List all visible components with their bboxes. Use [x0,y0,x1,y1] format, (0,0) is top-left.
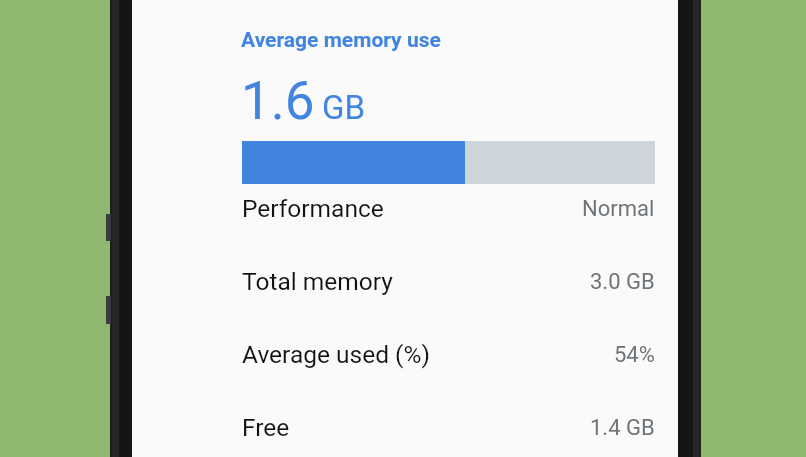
staticText: 3.0 GB [590,269,655,295]
staticText: Average used (%) [242,340,430,369]
button[interactable]: Total memory [242,245,655,318]
staticText: 1.6 [241,70,315,132]
button[interactable]: Performance [242,172,655,245]
staticText: Average memory use [241,28,441,53]
staticText: GB [322,88,366,127]
button[interactable]: Free [242,391,655,457]
staticText: Normal [582,196,655,222]
staticText: Free [242,413,290,442]
staticText: 1.4 GB [590,415,655,441]
button[interactable]: Average used (%) [242,318,655,391]
staticText: 54% [614,342,655,368]
staticText: Total memory [242,267,393,296]
staticText: Performance [242,194,384,223]
